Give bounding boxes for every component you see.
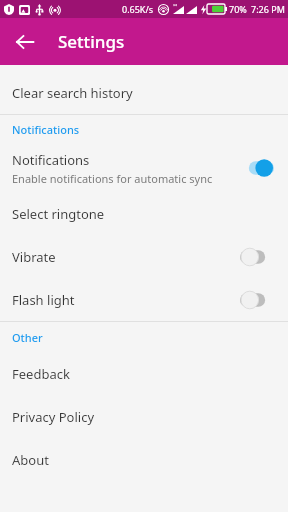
staticText: 70% (229, 3, 247, 15)
staticText: Clear search history (12, 84, 133, 102)
staticText: Flash light (12, 291, 240, 309)
button[interactable]: Toggle on (240, 157, 274, 179)
button[interactable]: Notifications (0, 144, 288, 192)
staticText: Select ringtone (12, 205, 105, 223)
staticText: Vibrate (12, 248, 240, 266)
button[interactable]: Clear search history (0, 72, 288, 114)
button[interactable]: Privacy Policy (0, 395, 288, 438)
button[interactable]: Feedback (0, 352, 288, 395)
button[interactable]: Vibrate (0, 235, 288, 278)
staticText: Notifications (12, 151, 90, 169)
staticText: Enable notifications for automatic sync (12, 171, 213, 186)
button[interactable]: Toggle off (240, 246, 274, 268)
staticText: 7:26 PM (251, 3, 285, 15)
button[interactable]: Select ringtone (0, 192, 288, 235)
button[interactable]: About (0, 438, 288, 481)
button[interactable]: Back (8, 25, 42, 59)
staticText: Settings (58, 30, 125, 53)
staticText: Feedback (12, 365, 70, 383)
staticText: About (12, 451, 49, 469)
button[interactable]: Toggle off (240, 289, 274, 311)
staticText: Privacy Policy (12, 408, 95, 426)
button[interactable]: Flash light (0, 278, 288, 321)
staticText: Notifications (12, 122, 80, 137)
staticText: 0.65K/s (122, 3, 154, 15)
staticText: Other (12, 330, 43, 345)
